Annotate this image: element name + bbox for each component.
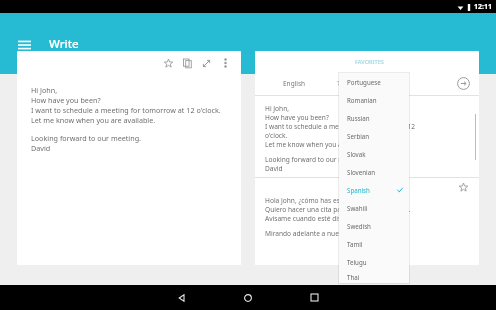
staticText: Romanian bbox=[347, 96, 377, 104]
button[interactable]: English bbox=[255, 71, 333, 95]
staticText: Russian bbox=[347, 114, 370, 122]
button[interactable]: Home bbox=[215, 285, 281, 310]
staticText: Thai bbox=[347, 273, 360, 281]
button[interactable]: Favorite translation bbox=[454, 178, 473, 196]
button[interactable]: FAVORITES bbox=[264, 58, 475, 71]
staticText: Let me know when you are available. bbox=[265, 140, 379, 149]
staticText: Looking forward to our meeting. bbox=[265, 155, 366, 164]
button[interactable]: Telugu bbox=[339, 253, 409, 271]
staticText: Hi John, bbox=[265, 104, 290, 113]
staticText: How have you been? bbox=[265, 113, 329, 122]
button[interactable]: Romanian bbox=[339, 91, 409, 109]
staticText: David bbox=[265, 164, 283, 173]
button[interactable]: Spanish bbox=[339, 181, 409, 199]
button[interactable]: Swahili bbox=[339, 199, 409, 217]
button[interactable]: Thai bbox=[339, 271, 409, 283]
staticText: Write bbox=[49, 36, 79, 52]
staticText: Looking forward to our meeting. bbox=[31, 133, 141, 143]
staticText: 12:11 bbox=[474, 2, 492, 12]
staticText: Swedish bbox=[347, 222, 371, 230]
staticText: Hi John, bbox=[31, 85, 58, 95]
button[interactable]: Copy bbox=[178, 52, 197, 74]
button[interactable]: Back bbox=[149, 285, 215, 310]
staticText: I want to schedule a meeting for tomorro… bbox=[31, 105, 221, 115]
staticText: Slovak bbox=[347, 150, 366, 158]
staticText: Tamil bbox=[347, 240, 363, 248]
button[interactable]: Translate bbox=[455, 75, 471, 91]
button[interactable]: Swedish bbox=[339, 217, 409, 235]
staticText: Quiero hacer una cita para mañana a las … bbox=[265, 205, 411, 214]
button[interactable]: Recent apps bbox=[281, 285, 347, 310]
staticText: Slovenian bbox=[347, 168, 375, 176]
button[interactable]: Serbian bbox=[339, 127, 409, 145]
staticText: How have you been? bbox=[31, 95, 101, 105]
staticText: Let me know when you are available. bbox=[31, 115, 156, 125]
staticText: Swahili bbox=[347, 204, 368, 212]
staticText: I want to schedule a meeting for tomorro… bbox=[265, 122, 416, 131]
button[interactable]: Slovenian bbox=[339, 163, 409, 181]
staticText: FAVORITES bbox=[355, 58, 384, 66]
button[interactable]: More options bbox=[216, 52, 235, 74]
staticText: Telugu bbox=[347, 258, 367, 266]
staticText: o'clock. bbox=[265, 131, 288, 140]
button[interactable]: Russian bbox=[339, 109, 409, 127]
staticText: Serbian bbox=[347, 132, 370, 140]
button[interactable]: Portuguese bbox=[339, 73, 409, 91]
button[interactable]: Tamil bbox=[339, 235, 409, 253]
staticText: David bbox=[31, 143, 51, 153]
button[interactable]: Favorite bbox=[159, 52, 178, 74]
staticText: English bbox=[283, 79, 306, 88]
staticText: Mirando adelante a nuestra reunión. bbox=[265, 229, 379, 238]
button[interactable]: Open navigation drawer bbox=[11, 31, 37, 57]
button[interactable]: Swap languages bbox=[333, 75, 349, 91]
button[interactable]: Expand bbox=[197, 52, 216, 74]
staticText: Hola John, ¿cómo has estado? bbox=[265, 196, 357, 205]
staticText: Spanish bbox=[347, 186, 370, 194]
button[interactable]: Slovak bbox=[339, 145, 409, 163]
staticText: Avísame cuando esté disponible. bbox=[265, 214, 367, 223]
staticText: Portuguese bbox=[347, 78, 381, 86]
